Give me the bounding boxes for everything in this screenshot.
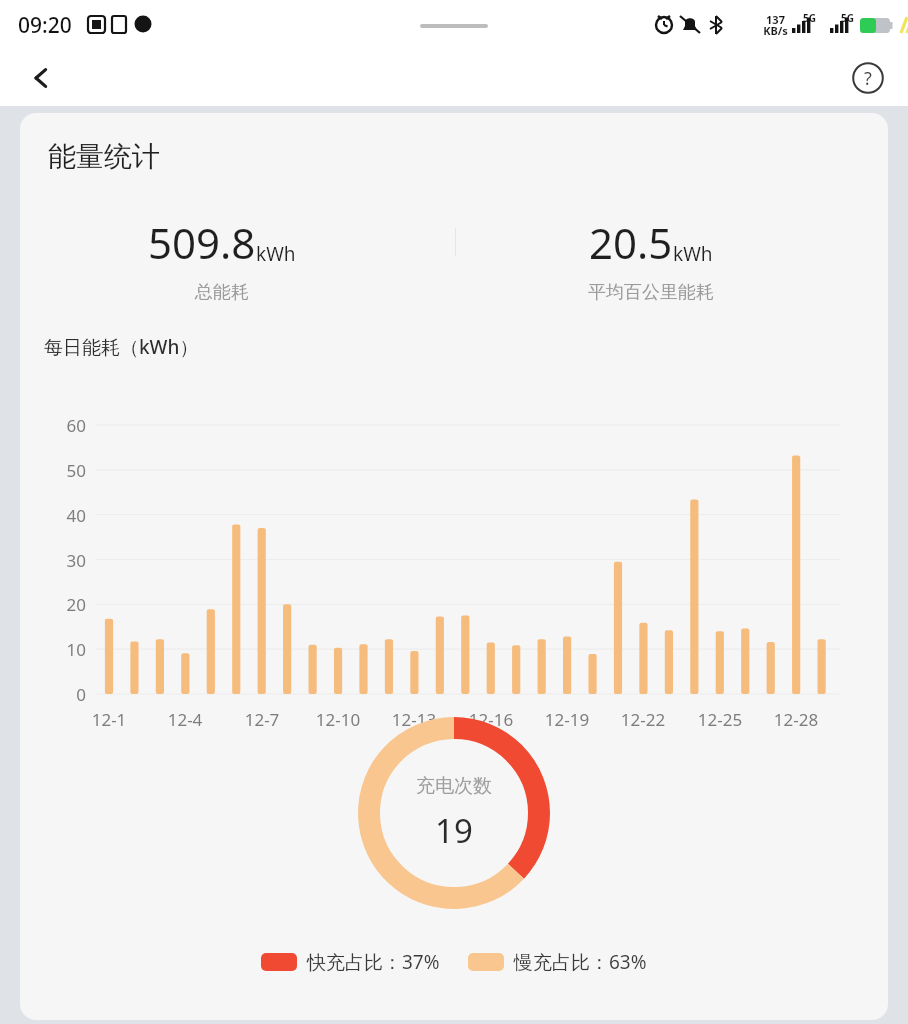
staticText: 快充占比：37% (307, 949, 440, 975)
staticText: 40 (42, 504, 86, 527)
staticText: 509.8 (148, 214, 256, 271)
staticText: ? (864, 66, 872, 91)
staticText: 12-10 (303, 708, 373, 731)
staticText: 137 KB/s (763, 12, 788, 39)
staticText: 50 (42, 459, 86, 482)
staticText: 12-1 (74, 708, 144, 731)
staticText: 总能耗 (195, 281, 249, 304)
staticText: 60 (42, 414, 86, 437)
staticText: 20.5 (589, 214, 673, 271)
button[interactable]: 慢充占比：63% (468, 949, 647, 975)
staticText: 30 (42, 549, 86, 572)
button[interactable]: Back (14, 50, 70, 106)
staticText: 12-4 (150, 708, 220, 731)
staticText: kWh (256, 241, 296, 267)
staticText: 平均百公里能耗 (588, 281, 714, 304)
staticText: 12-7 (227, 708, 297, 731)
staticText: 19 (435, 808, 473, 853)
staticText: 10 (42, 638, 86, 661)
staticText: 0 (42, 683, 86, 706)
staticText: 每日能耗（kWh） (44, 334, 199, 360)
button[interactable]: 快充占比：37% (261, 949, 440, 975)
staticText: 5G (841, 11, 854, 25)
staticText: 12-16 (456, 708, 526, 731)
staticText: 12-19 (532, 708, 602, 731)
button[interactable]: Help (844, 54, 892, 102)
staticText: 12-13 (379, 708, 449, 731)
staticText: 12-25 (685, 708, 755, 731)
staticText: kWh (673, 241, 713, 267)
staticText: 充电次数 (416, 774, 492, 798)
staticText: 5G (803, 11, 816, 25)
staticText: 12-22 (608, 708, 678, 731)
staticText: 20 (42, 593, 86, 616)
staticText: 能量统计 (48, 139, 160, 174)
staticText: 慢充占比：63% (514, 949, 647, 975)
staticText: 12-28 (761, 708, 831, 731)
staticText: 09:20 (18, 11, 72, 40)
